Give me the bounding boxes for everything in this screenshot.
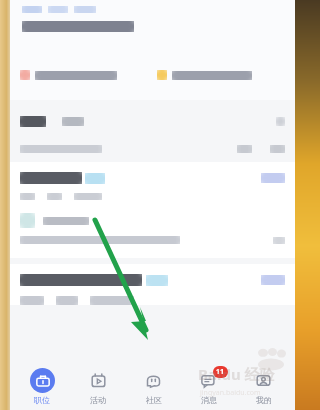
button[interactable] — [237, 145, 252, 153]
staticText: 我的 — [256, 395, 272, 405]
button[interactable] — [10, 264, 295, 305]
staticText: jingyan.baidu.com — [200, 388, 261, 398]
staticText: 职位 — [34, 395, 50, 405]
staticText: 社区 — [146, 395, 162, 405]
button[interactable] — [62, 117, 84, 126]
staticText: 活动 — [90, 395, 106, 405]
button[interactable]: 社区 — [126, 362, 181, 410]
button[interactable]: 11 — [181, 362, 236, 410]
button[interactable]: 我的 — [236, 362, 291, 410]
button[interactable]: 职位 — [14, 362, 70, 410]
button[interactable] — [270, 145, 285, 153]
button[interactable]: 活动 — [70, 362, 126, 410]
staticText: Baidu 经验 — [198, 364, 275, 384]
button[interactable] — [10, 162, 295, 258]
staticText: 消息 — [201, 395, 217, 405]
staticText: 11 — [216, 367, 225, 377]
button[interactable] — [20, 116, 46, 127]
button[interactable]: Search — [276, 117, 285, 126]
